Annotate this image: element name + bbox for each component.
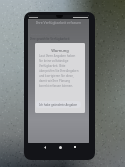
button[interactable]: Ich habe geänderte Angaben — [36, 101, 81, 108]
staticText: Ihre gewählte Verfügbarkeit — [30, 37, 70, 41]
staticText: Ihre Verfügbarkeit erfassen — [36, 20, 82, 25]
button[interactable]: Back — [39, 141, 51, 153]
staticText: Laut Ihren Angaben haben Sie keine volls… — [39, 54, 79, 87]
staticText: Warnung — [35, 48, 85, 53]
button[interactable]: Recent apps — [69, 141, 81, 153]
button[interactable]: Ihre Verfügbarkeit erfassen — [28, 19, 89, 25]
staticText: Ich habe geänderte Angaben — [39, 103, 78, 107]
button[interactable]: Home — [54, 141, 66, 153]
